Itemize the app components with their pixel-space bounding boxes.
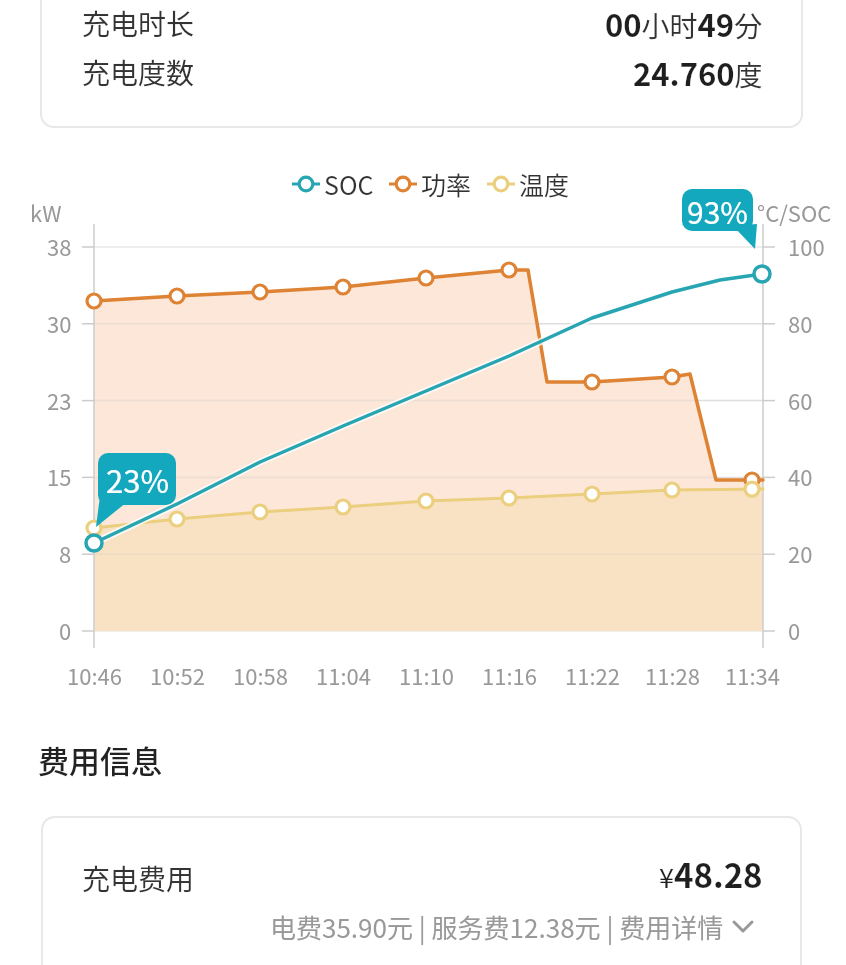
staticText: 0 (788, 614, 801, 646)
staticText: 00小时49分 (605, 1, 763, 46)
staticText: 11:22 (565, 659, 620, 691)
staticText: 充电度数 (82, 52, 195, 93)
staticText: ¥48.28 (659, 850, 763, 898)
staticText: 功率 (421, 166, 472, 202)
staticText: 电费35.90元 | 服务费12.38元 | 费用详情 (270, 908, 724, 946)
staticText: 20 (788, 537, 813, 569)
staticText: °C/SOC (757, 196, 832, 228)
staticText: 24.760度 (633, 50, 763, 95)
staticText: 30 (47, 307, 72, 339)
button[interactable]: 温度 (487, 166, 570, 202)
staticText: kW (30, 196, 62, 228)
staticText: 充电时长 (82, 3, 195, 44)
staticText: 40 (788, 460, 813, 492)
staticText: 充电费用 (82, 858, 195, 899)
staticText: 10:58 (233, 659, 288, 691)
staticText: 38 (47, 230, 72, 262)
button[interactable]: SOC (292, 166, 374, 202)
staticText: 60 (788, 384, 813, 416)
staticText: 100 (788, 230, 825, 262)
button[interactable]: 功率 (389, 166, 472, 202)
staticText: 93% (687, 189, 748, 231)
staticText: 23% (106, 457, 169, 502)
staticText: 温度 (519, 166, 570, 202)
staticText: 10:46 (67, 659, 122, 691)
staticText: 0 (59, 614, 72, 646)
staticText: 80 (788, 307, 813, 339)
staticText: 23 (47, 384, 72, 416)
staticText: 11:04 (316, 659, 371, 691)
staticText: 15 (47, 460, 72, 492)
button[interactable]: 电费35.90元 | 服务费12.38元 | 费用详情 (270, 908, 754, 946)
staticText: 11:10 (399, 659, 454, 691)
staticText: 8 (59, 537, 72, 569)
staticText: 10:52 (150, 659, 205, 691)
staticText: 费用信息 (38, 737, 162, 782)
staticText: 11:16 (482, 659, 537, 691)
staticText: 11:34 (725, 659, 780, 691)
staticText: SOC (324, 166, 374, 202)
staticText: 11:28 (645, 659, 700, 691)
